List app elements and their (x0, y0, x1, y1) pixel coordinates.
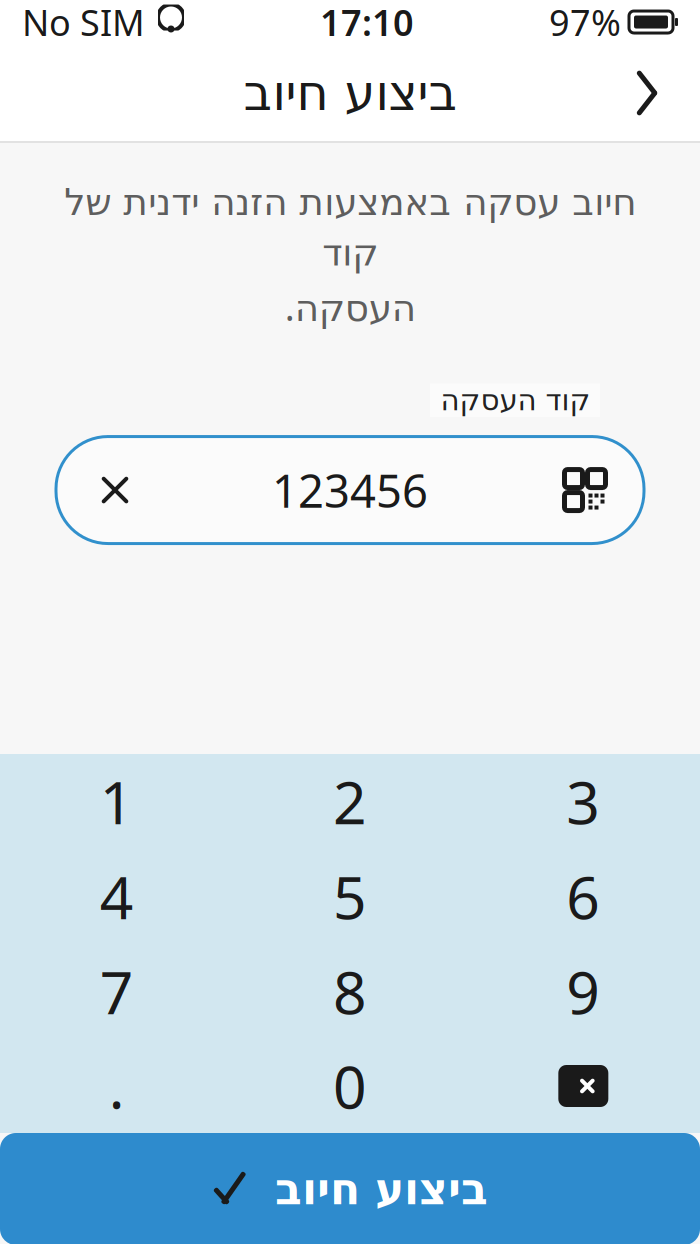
staticText: No SIM (22, 0, 145, 46)
staticText: ביצוע חיוב (243, 65, 457, 121)
staticText: . (109, 1047, 125, 1125)
staticText: 5 (333, 857, 367, 935)
staticText: 1 (100, 762, 134, 840)
button[interactable]: 7 (0, 944, 233, 1039)
staticText: 3 (566, 762, 600, 840)
staticText: 123456 (272, 460, 428, 520)
button[interactable]: Back (612, 55, 682, 131)
button[interactable]: Delete (467, 1039, 700, 1133)
staticText: קוד העסקה (440, 383, 590, 417)
button[interactable]: 0 (233, 1039, 467, 1133)
staticText: 8 (333, 952, 367, 1030)
staticText: 4 (100, 857, 134, 935)
staticText: 6 (566, 857, 600, 935)
staticText: חיוב עסקה באמצעות הזנה ידנית של קוד העסק… (64, 181, 636, 331)
button[interactable]: Clear (80, 455, 150, 525)
button[interactable]: 8 (233, 944, 467, 1039)
button[interactable]: 2 (233, 754, 467, 849)
staticText: 2 (333, 762, 367, 840)
button[interactable]: 3 (467, 754, 700, 849)
staticText: 0 (333, 1047, 367, 1125)
staticText: 97% (549, 0, 621, 46)
staticText: 9 (566, 952, 600, 1030)
staticText: 17:10 (320, 0, 414, 46)
button[interactable]: . (0, 1039, 233, 1133)
button[interactable]: Scan QR code (550, 455, 620, 525)
staticText: 7 (100, 952, 134, 1030)
button[interactable]: 4 (0, 849, 233, 944)
button[interactable]: 5 (233, 849, 467, 944)
staticText: ביצוע חיוב (274, 1164, 487, 1214)
button[interactable]: 1 (0, 754, 233, 849)
button[interactable]: 9 (467, 944, 700, 1039)
button[interactable]: 6 (467, 849, 700, 944)
button[interactable]: ביצוע חיוב (0, 1133, 700, 1244)
